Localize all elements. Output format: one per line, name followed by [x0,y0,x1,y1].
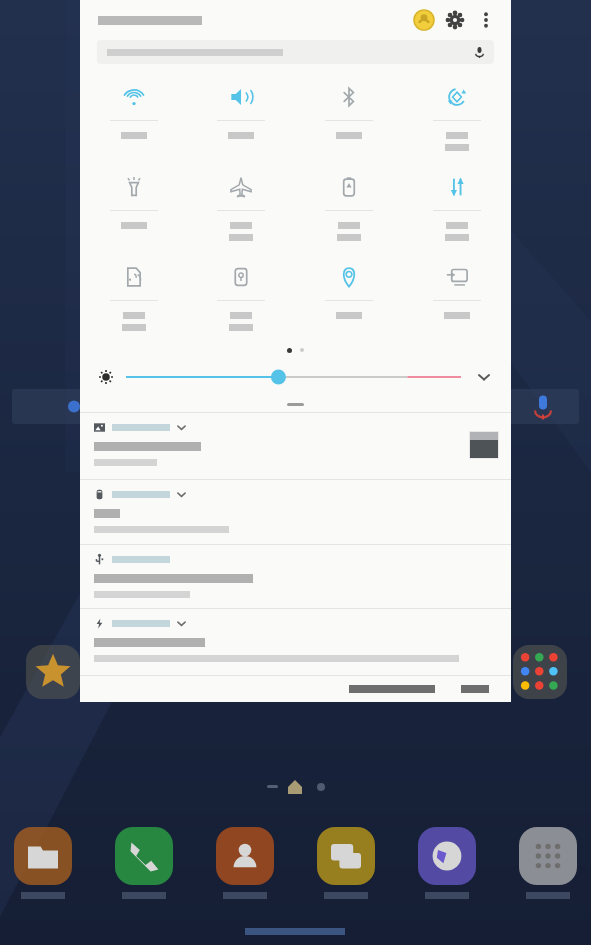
button[interactable]: Wi-Fi [80,72,187,162]
button[interactable]: Settings [439,4,471,36]
button[interactable]: Sound [187,72,295,162]
button[interactable]: App 2 [216,827,274,885]
button[interactable]: Power saving [295,162,403,252]
button[interactable]: Mobile hotspot [80,252,187,342]
button[interactable]: Profile [409,5,439,35]
button[interactable]: Mobile data [403,162,511,252]
button[interactable] [287,403,304,406]
button[interactable]: More options [471,5,501,35]
button[interactable]: Location [295,252,403,342]
button[interactable]: Screen captured [80,413,511,479]
button[interactable]: Faster charging mode [80,609,511,675]
button[interactable] [12,389,579,424]
button[interactable]: Auto rotate [403,72,511,162]
button[interactable] [97,40,494,64]
button[interactable] [26,645,80,699]
button[interactable]: App 4 [418,827,476,885]
button[interactable] [513,645,567,699]
button[interactable] [126,365,461,389]
button[interactable]: App 3 [317,827,375,885]
button[interactable]: App 0 [14,827,72,885]
button[interactable]: Private mode [187,252,295,342]
button[interactable]: SD card [80,480,511,544]
button[interactable]: App 1 [115,827,173,885]
button[interactable]: Transferring media files via USB [80,545,511,608]
button[interactable]: Bluetooth [295,72,403,162]
button[interactable]: Smart View [403,252,511,342]
button[interactable]: App 5 [519,827,577,885]
button[interactable]: Expand [471,364,497,390]
button[interactable]: Flight mode [187,162,295,252]
button[interactable]: Brightness [94,365,118,389]
button[interactable]: Torch [80,162,187,252]
